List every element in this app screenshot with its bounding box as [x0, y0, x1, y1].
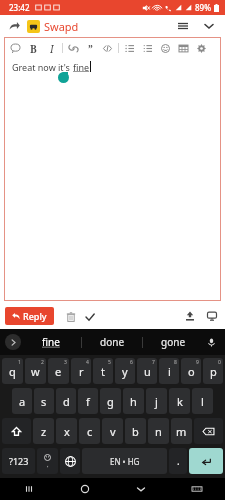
button[interactable]: I	[45, 42, 58, 55]
staticText: p	[210, 364, 217, 379]
button[interactable]: t	[93, 358, 113, 384]
button[interactable]: n	[148, 418, 169, 444]
staticText: a	[19, 394, 26, 409]
button[interactable]: Expand	[201, 18, 217, 34]
staticText: h	[130, 394, 137, 409]
button[interactable]: e	[48, 358, 69, 384]
button[interactable]: Hide keyboard	[113, 478, 169, 500]
button[interactable]: Enter	[189, 448, 223, 474]
button[interactable]: Table	[177, 42, 190, 55]
button[interactable]: q	[2, 358, 23, 384]
staticText: 4	[86, 359, 89, 366]
button[interactable]: B	[27, 42, 40, 55]
button[interactable]: f	[78, 388, 98, 414]
button[interactable]: Settings	[195, 42, 208, 55]
staticText: ,	[47, 461, 49, 469]
button[interactable]: Menu	[175, 18, 191, 34]
button[interactable]: fine	[21, 329, 81, 355]
staticText: 2	[41, 359, 44, 366]
staticText: 9	[196, 359, 199, 366]
button[interactable]: j	[146, 388, 167, 414]
button[interactable]: Link	[67, 42, 80, 55]
button[interactable]: Change language	[60, 448, 80, 474]
button[interactable]: done	[82, 329, 142, 355]
button[interactable]: m	[171, 418, 192, 444]
staticText: 8	[174, 359, 177, 366]
button[interactable]: Delete	[63, 309, 78, 324]
button[interactable]: a	[12, 388, 32, 414]
staticText: v	[110, 424, 116, 439]
button[interactable]: p	[203, 358, 223, 384]
button[interactable]: Swapd	[27, 19, 79, 34]
button[interactable]: y	[115, 358, 135, 384]
button[interactable]: .	[169, 448, 187, 474]
staticText: z	[41, 424, 47, 439]
button[interactable]: Confirm	[82, 309, 97, 324]
staticText: f	[86, 394, 90, 409]
button[interactable]: Home	[57, 478, 113, 500]
button[interactable]: Switch keyboard	[169, 478, 225, 500]
button[interactable]: i	[159, 358, 179, 384]
staticText: d	[63, 394, 70, 409]
button[interactable]: ?123	[2, 448, 35, 474]
button[interactable]: h	[123, 388, 144, 414]
staticText: n	[155, 424, 162, 439]
staticText: EN • HG	[110, 456, 140, 467]
staticText: q	[9, 364, 16, 379]
button[interactable]: w	[25, 358, 46, 384]
button[interactable]: o	[181, 358, 201, 384]
staticText: w	[31, 364, 40, 379]
staticText: s	[41, 394, 47, 409]
button[interactable]: z	[33, 418, 54, 444]
staticText: o	[188, 364, 195, 379]
staticText: 23:42	[9, 2, 30, 13]
button[interactable]: u	[137, 358, 157, 384]
button[interactable]: Voice input	[203, 334, 219, 350]
button[interactable]: Emoji	[37, 448, 58, 474]
button[interactable]: l	[192, 388, 213, 414]
staticText: Swapd	[44, 19, 79, 34]
button[interactable]: Forward	[6, 18, 22, 34]
staticText: c	[87, 424, 93, 439]
button[interactable]: Numbered list	[141, 42, 154, 55]
button[interactable]: Reply	[5, 307, 54, 325]
button[interactable]: ”	[84, 42, 97, 55]
staticText: l	[201, 394, 204, 409]
button[interactable]: gone	[143, 329, 203, 355]
button[interactable]: Upload	[182, 308, 198, 324]
button[interactable]: Bullet list	[123, 42, 136, 55]
button[interactable]: Recents	[0, 478, 57, 500]
staticText: fine	[42, 335, 60, 349]
button[interactable]: Backspace	[194, 418, 223, 444]
button[interactable]: c	[79, 418, 100, 444]
staticText: 1	[18, 359, 21, 366]
staticText: e	[55, 364, 62, 379]
button[interactable]: v	[102, 418, 123, 444]
staticText: 0	[218, 359, 221, 366]
staticText: 3	[64, 359, 67, 366]
button[interactable]: s	[34, 388, 54, 414]
button[interactable]: g	[100, 388, 121, 414]
button[interactable]: Shift	[2, 418, 31, 444]
button[interactable]: Code	[101, 42, 114, 55]
staticText: I	[50, 42, 54, 55]
staticText: .	[177, 454, 180, 468]
button[interactable]: quote-bubble	[9, 42, 22, 55]
staticText: b	[132, 424, 139, 439]
staticText: Great now it's	[12, 61, 73, 73]
button[interactable]: Emoji	[159, 42, 172, 55]
button[interactable]: b	[125, 418, 146, 444]
button[interactable]: k	[169, 388, 190, 414]
staticText: 89%	[195, 2, 211, 13]
button[interactable]: More suggestions	[5, 334, 21, 350]
button[interactable]: r	[71, 358, 91, 384]
staticText: gone	[161, 335, 186, 349]
button[interactable]: d	[56, 388, 76, 414]
button[interactable]: x	[56, 418, 77, 444]
staticText: fine	[73, 61, 90, 73]
staticText: j	[155, 394, 158, 409]
staticText: y	[122, 364, 128, 379]
staticText: done	[100, 335, 125, 349]
button[interactable]: Preview	[204, 308, 220, 324]
button[interactable]: EN • HG	[82, 448, 167, 474]
